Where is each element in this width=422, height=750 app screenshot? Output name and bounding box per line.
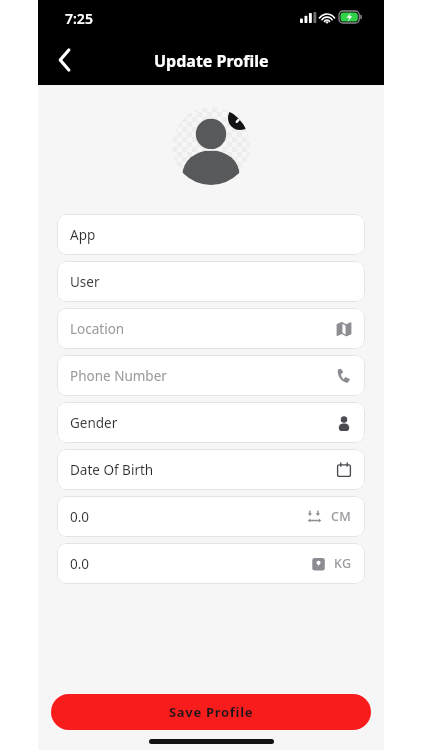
button[interactable]: Location bbox=[57, 308, 365, 349]
button[interactable]: Date Of Birth bbox=[57, 449, 365, 490]
staticText: 7:25 bbox=[65, 9, 93, 28]
button[interactable]: Phone Number bbox=[57, 355, 365, 396]
staticText: Date Of Birth bbox=[70, 461, 336, 479]
button[interactable]: Save Profile bbox=[51, 694, 371, 730]
staticText: Location bbox=[70, 320, 336, 338]
button[interactable]: 0.0 bbox=[57, 496, 365, 537]
staticText: Update Profile bbox=[154, 50, 269, 72]
button[interactable]: Gender bbox=[57, 402, 365, 443]
staticText: KG bbox=[334, 555, 352, 572]
button[interactable]: Change profile photo bbox=[172, 107, 250, 185]
staticText: Gender bbox=[70, 414, 336, 432]
staticText: 0.0 bbox=[70, 508, 308, 526]
staticText: App bbox=[70, 226, 352, 244]
staticText: User bbox=[70, 273, 352, 291]
button[interactable]: User bbox=[57, 261, 365, 302]
staticText: Phone Number bbox=[70, 367, 336, 385]
button[interactable]: App bbox=[57, 214, 365, 255]
staticText: 0.0 bbox=[70, 555, 311, 573]
button[interactable]: 0.0 bbox=[57, 543, 365, 584]
button[interactable]: Back bbox=[46, 41, 84, 79]
staticText: Save Profile bbox=[169, 703, 254, 721]
staticText: CM bbox=[331, 508, 352, 525]
